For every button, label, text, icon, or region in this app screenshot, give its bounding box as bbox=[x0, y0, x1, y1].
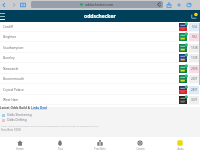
button[interactable]: Crystal Palace bbox=[0, 85, 200, 95]
staticText: Free Bets bbox=[94, 147, 106, 150]
button[interactable]: Tabs bbox=[185, 1, 193, 9]
button[interactable]: Menu bbox=[0, 11, 7, 21]
button[interactable]: Casino bbox=[120, 137, 160, 150]
staticText: Tips bbox=[58, 147, 63, 150]
staticText: Brighton bbox=[3, 35, 17, 39]
staticText: oddschecker bbox=[84, 13, 116, 20]
button[interactable]: Back bbox=[0, 1, 8, 9]
staticText: 29/5 bbox=[191, 67, 198, 71]
button[interactable]: Tips bbox=[40, 137, 80, 150]
staticText: Odds Shortening bbox=[7, 113, 32, 117]
button[interactable]: Southampton bbox=[0, 43, 200, 53]
staticText: 33/1 bbox=[191, 98, 198, 102]
button[interactable]: Apps bbox=[160, 137, 200, 150]
staticText: Apps bbox=[177, 147, 184, 150]
staticText: Cardiff bbox=[3, 25, 14, 29]
button[interactable]: Odds Drifting bbox=[2, 118, 27, 122]
button[interactable]: Free Bets bbox=[80, 137, 120, 150]
staticText: 13/5 bbox=[191, 56, 198, 60]
staticText: Newcastle bbox=[3, 67, 19, 71]
staticText: Home bbox=[16, 147, 24, 150]
button[interactable]: oddschecker.com bbox=[31, 1, 163, 8]
button[interactable]: New tab bbox=[175, 1, 183, 9]
button[interactable]: Share bbox=[165, 1, 173, 9]
staticText: 5/4 bbox=[192, 25, 197, 29]
button[interactable]: Bet slip bbox=[190, 12, 198, 20]
button[interactable]: Burnley bbox=[0, 53, 200, 63]
staticText: oddschecker.com bbox=[85, 2, 114, 7]
button[interactable]: Forward bbox=[10, 1, 18, 9]
button[interactable]: Cardiff bbox=[0, 22, 200, 32]
button[interactable]: Bookmarks bbox=[19, 1, 27, 9]
button[interactable]: West Ham bbox=[0, 95, 200, 105]
staticText: Burnley bbox=[3, 56, 15, 60]
staticText: Casino bbox=[136, 147, 145, 150]
button[interactable]: Odds Shortening bbox=[2, 113, 32, 117]
staticText: Odds shown come direct from online bookm… bbox=[1, 124, 99, 127]
staticText: Crystal Palace bbox=[3, 88, 24, 92]
staticText: Latest Odds Build & bbox=[0, 106, 31, 110]
staticText: Links Deal bbox=[31, 106, 47, 110]
button[interactable]: Latest Odds Build & bbox=[0, 106, 47, 110]
staticText: 15/8 bbox=[191, 46, 198, 50]
button[interactable]: Bournemouth bbox=[0, 74, 200, 84]
button[interactable]: Home bbox=[0, 137, 40, 150]
staticText: 28/1 bbox=[191, 88, 198, 92]
button[interactable]: Brighton bbox=[0, 32, 200, 42]
staticText: Free Bets 100% bbox=[1, 128, 22, 132]
staticText: Odds Drifting bbox=[7, 118, 27, 122]
staticText: West Ham bbox=[3, 98, 19, 102]
staticText: 20/1 bbox=[191, 77, 198, 81]
staticText: Bournemouth bbox=[3, 77, 25, 81]
button[interactable]: Newcastle bbox=[0, 64, 200, 74]
staticText: 9/2 bbox=[192, 35, 197, 39]
staticText: Southampton bbox=[3, 46, 24, 50]
